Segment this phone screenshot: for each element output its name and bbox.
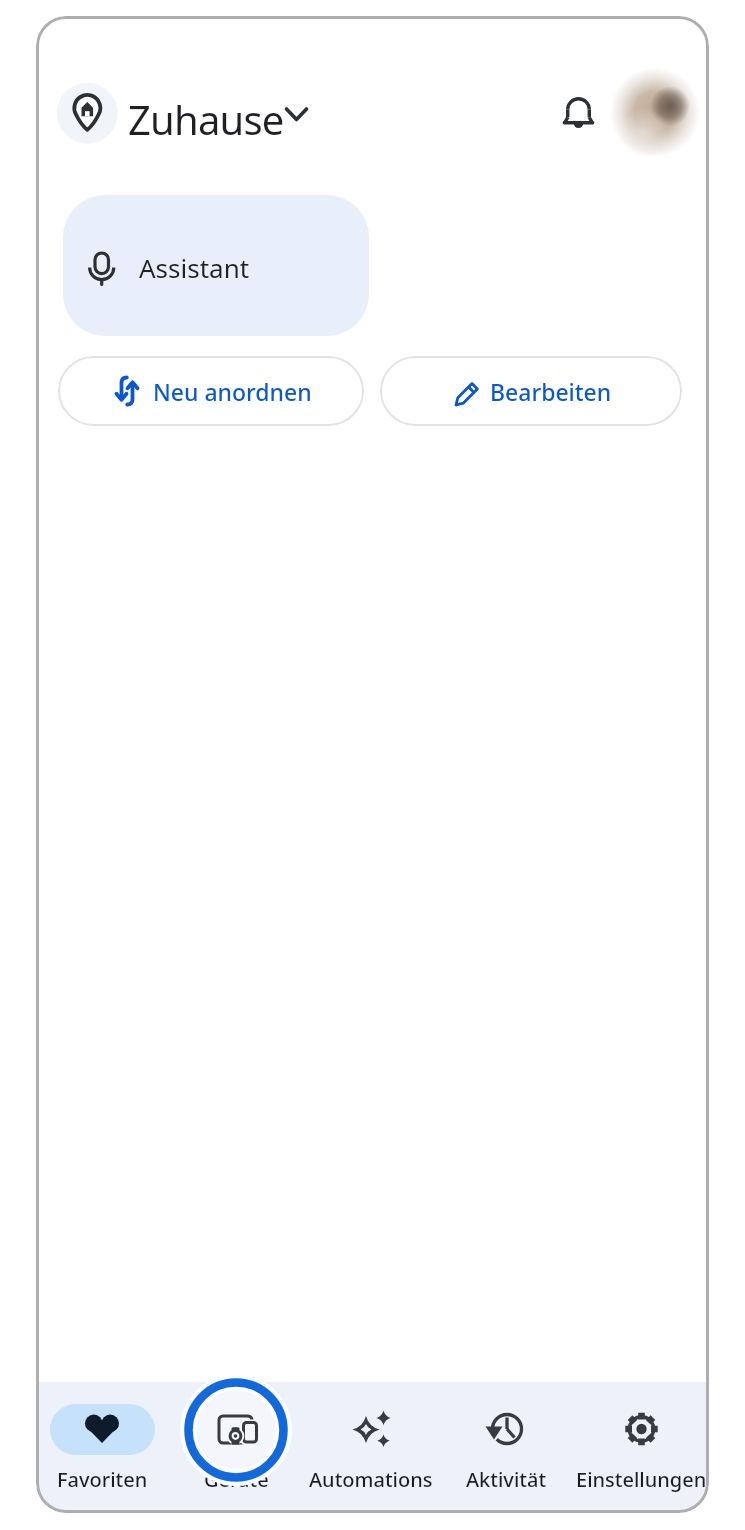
staticText: Zuhause: [128, 92, 284, 136]
staticText: Einstellungen: [576, 1466, 707, 1493]
staticText: Neu anordnen: [153, 376, 312, 407]
staticText: Aktivität: [466, 1466, 547, 1493]
staticText: Bearbeiten: [490, 376, 612, 407]
staticText: Automations: [309, 1466, 433, 1493]
staticText: Favoriten: [57, 1466, 148, 1493]
staticText: Assistant: [139, 250, 250, 285]
staticText: Geräte: [204, 1466, 269, 1493]
